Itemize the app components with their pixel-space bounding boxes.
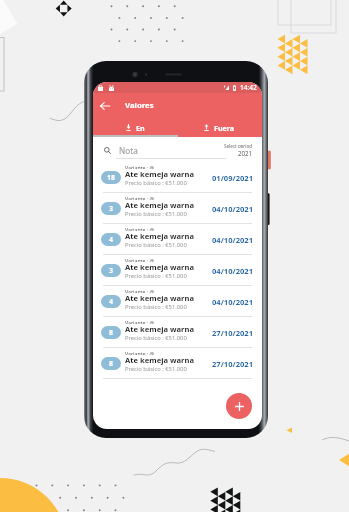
staticText: Ate kemeja warna: [125, 355, 194, 365]
button[interactable]: 8: [93, 348, 262, 379]
staticText: Variante : @: [125, 165, 155, 169]
staticText: Valores: [125, 100, 154, 111]
staticText: Ate kemeja warna: [125, 293, 194, 303]
button[interactable]: Add: [226, 393, 252, 419]
staticText: Ate kemeja warna: [125, 324, 194, 334]
staticText: 27/10/2021: [212, 359, 254, 369]
staticText: Variante : @: [125, 258, 155, 262]
staticText: Variante : @: [125, 196, 155, 200]
staticText: Variante : @: [125, 227, 155, 231]
staticText: 2021: [238, 149, 253, 157]
staticText: Fuera: [214, 123, 235, 133]
staticText: 01/09/2021: [212, 173, 254, 183]
button[interactable]: 18: [93, 162, 262, 193]
staticText: Precio básico : €51.000: [125, 365, 187, 372]
staticText: 8: [109, 359, 114, 369]
staticText: 18: [107, 173, 116, 183]
staticText: Precio básico : €51.000: [125, 241, 187, 248]
staticText: Ate kemeja warna: [125, 262, 194, 272]
staticText: Precio básico : €51.000: [125, 179, 187, 186]
staticText: 04/10/2021: [212, 204, 254, 214]
staticText: 04/10/2021: [212, 235, 254, 245]
staticText: Precio básico : €51.000: [125, 210, 187, 217]
staticText: Ate kemeja warna: [125, 169, 194, 179]
staticText: Nota: [119, 145, 138, 156]
button[interactable]: 4: [93, 286, 262, 317]
button[interactable]: 3: [93, 255, 262, 286]
staticText: 4: [109, 235, 114, 245]
button[interactable]: 4: [93, 224, 262, 255]
staticText: 8: [109, 328, 114, 338]
staticText: 14:42: [240, 83, 257, 92]
staticText: Precio básico : €51.000: [125, 303, 187, 310]
staticText: Variante : @: [125, 289, 155, 293]
staticText: En: [136, 123, 145, 133]
button[interactable]: Back: [93, 93, 117, 118]
staticText: 04/10/2021: [212, 266, 254, 276]
button[interactable]: Fuera: [177, 118, 262, 137]
button[interactable]: 3: [93, 193, 262, 224]
staticText: 27/10/2021: [212, 328, 254, 338]
button[interactable]: En: [93, 118, 177, 137]
staticText: 04/10/2021: [212, 297, 254, 307]
staticText: 3: [109, 204, 114, 214]
staticText: 3: [109, 266, 114, 276]
staticText: 4: [109, 297, 114, 307]
staticText: Precio básico : €51.000: [125, 272, 187, 279]
button[interactable]: 8: [93, 317, 262, 348]
staticText: Ate kemeja warna: [125, 231, 194, 241]
staticText: Precio básico : €51.000: [125, 334, 187, 341]
staticText: Variante : @: [125, 351, 155, 355]
staticText: Variante : @: [125, 320, 155, 324]
staticText: Ate kemeja warna: [125, 200, 194, 210]
staticText: Select period: [224, 143, 253, 148]
